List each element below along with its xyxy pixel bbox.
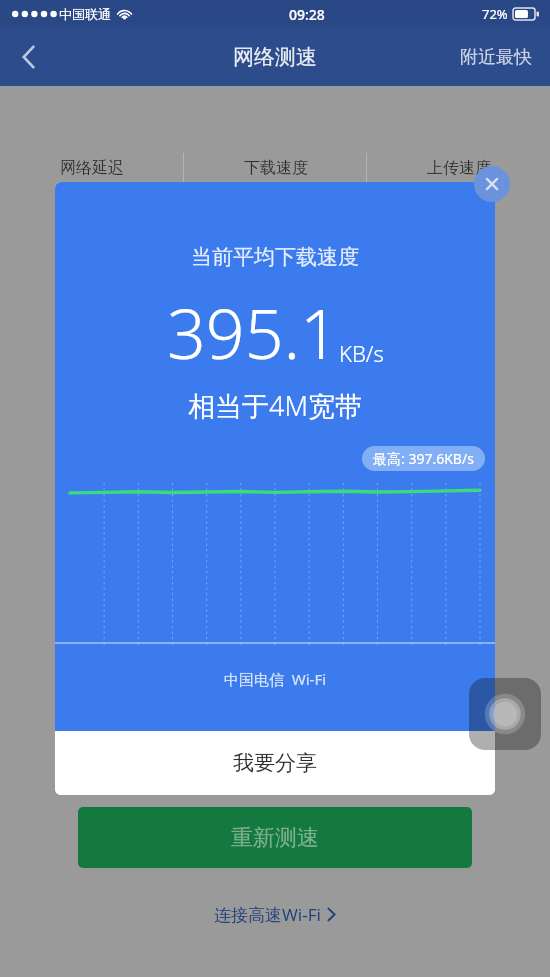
button[interactable]: Assistive touch <box>469 678 541 750</box>
staticText: 网络延迟 <box>60 158 124 178</box>
staticText: 下载速度 <box>244 158 308 178</box>
staticText: 连接高速Wi-Fi <box>214 903 321 926</box>
staticText: 中国电信 Wi-Fi <box>224 669 327 689</box>
button[interactable]: 重新测速 <box>78 807 472 868</box>
staticText: 09:28 <box>289 5 325 24</box>
staticText: 中国联通 <box>59 6 111 22</box>
staticText: 当前平均下载速度 <box>191 244 359 270</box>
staticText: 附近最快 <box>460 46 532 69</box>
button[interactable]: 我要分享 <box>55 731 495 795</box>
button[interactable]: Close <box>474 166 510 202</box>
button[interactable]: 附近最快 <box>442 28 550 86</box>
staticText: 相当于4M宽带 <box>188 387 362 424</box>
button[interactable]: Back <box>0 28 58 86</box>
button[interactable]: 连接高速Wi-Fi <box>200 898 350 931</box>
staticText: 最高: 397.6KB/s <box>373 449 474 468</box>
staticText: 网络测速 <box>233 44 317 70</box>
staticText: 395.1 <box>167 286 339 379</box>
staticText: KB/s <box>339 338 384 368</box>
staticText: 我要分享 <box>233 750 317 776</box>
staticText: 上传速度 <box>427 158 491 178</box>
staticText: 重新测速 <box>231 824 319 852</box>
staticText: 72% <box>482 5 508 23</box>
